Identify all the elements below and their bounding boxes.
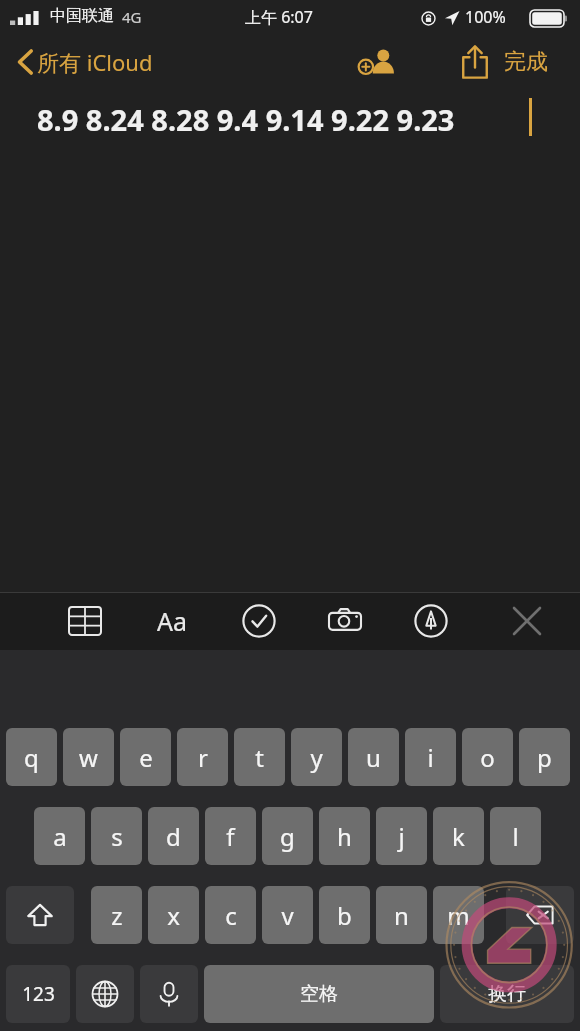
button[interactable]: a bbox=[34, 807, 85, 865]
button[interactable]: Dictation bbox=[140, 965, 198, 1023]
staticText: 完成 bbox=[504, 48, 548, 76]
staticText: d bbox=[166, 820, 181, 853]
button[interactable]: Camera bbox=[322, 592, 368, 650]
button[interactable]: k bbox=[433, 807, 484, 865]
button[interactable]: w bbox=[63, 728, 114, 786]
staticText: w bbox=[79, 741, 98, 774]
button[interactable]: c bbox=[205, 886, 256, 944]
button[interactable]: g bbox=[262, 807, 313, 865]
staticText: q bbox=[24, 741, 39, 774]
button[interactable]: j bbox=[376, 807, 427, 865]
button[interactable]: Next keyboard bbox=[76, 965, 134, 1023]
staticText: u bbox=[366, 741, 381, 774]
button[interactable]: t bbox=[234, 728, 285, 786]
staticText: y bbox=[310, 741, 323, 774]
staticText: 123 bbox=[22, 981, 55, 1007]
staticText: g bbox=[280, 820, 295, 853]
staticText: 100% bbox=[465, 6, 506, 28]
button[interactable]: 123 bbox=[6, 965, 70, 1023]
button[interactable]: Add people bbox=[348, 36, 408, 88]
staticText: v bbox=[281, 899, 294, 932]
button[interactable]: q bbox=[6, 728, 57, 786]
staticText: e bbox=[139, 741, 153, 774]
staticText: x bbox=[167, 899, 180, 932]
staticText: k bbox=[452, 820, 465, 853]
button[interactable]: v bbox=[262, 886, 313, 944]
staticText: 换行 bbox=[488, 982, 526, 1006]
staticText: o bbox=[480, 741, 495, 774]
button[interactable]: Close keyboard bbox=[504, 592, 550, 650]
button[interactable]: f bbox=[205, 807, 256, 865]
button[interactable]: Table bbox=[62, 592, 108, 650]
button[interactable]: Shift bbox=[6, 886, 74, 944]
staticText: 上午 6:07 bbox=[245, 6, 313, 28]
button[interactable]: m bbox=[433, 886, 484, 944]
button[interactable]: u bbox=[348, 728, 399, 786]
button[interactable]: d bbox=[148, 807, 199, 865]
staticText: p bbox=[537, 741, 552, 774]
button[interactable]: Share bbox=[446, 36, 504, 88]
staticText: h bbox=[337, 820, 352, 853]
button[interactable]: 换行 bbox=[440, 965, 574, 1023]
button[interactable]: Checklist bbox=[236, 592, 282, 650]
button[interactable]: o bbox=[462, 728, 513, 786]
staticText: n bbox=[394, 899, 409, 932]
button[interactable]: r bbox=[177, 728, 228, 786]
button[interactable]: p bbox=[519, 728, 570, 786]
button[interactable]: i bbox=[405, 728, 456, 786]
button[interactable]: n bbox=[376, 886, 427, 944]
staticText: Aa bbox=[157, 604, 188, 638]
button[interactable]: 完成 bbox=[498, 36, 554, 88]
staticText: 中国联通 bbox=[50, 6, 114, 26]
staticText: j bbox=[398, 820, 405, 853]
button[interactable]: e bbox=[120, 728, 171, 786]
button[interactable]: h bbox=[319, 807, 370, 865]
staticText: 空格 bbox=[300, 982, 338, 1006]
button[interactable]: b bbox=[319, 886, 370, 944]
staticText: m bbox=[447, 899, 470, 932]
button[interactable]: Delete bbox=[506, 886, 574, 944]
button[interactable]: y bbox=[291, 728, 342, 786]
staticText: l bbox=[512, 820, 519, 853]
button[interactable]: 所有 iCloud bbox=[10, 36, 161, 88]
staticText: t bbox=[255, 741, 264, 774]
button[interactable]: l bbox=[490, 807, 541, 865]
staticText: 4G bbox=[122, 7, 142, 27]
button[interactable]: z bbox=[91, 886, 142, 944]
staticText: c bbox=[225, 899, 237, 932]
staticText: z bbox=[111, 899, 123, 932]
staticText: r bbox=[198, 741, 208, 774]
staticText: b bbox=[337, 899, 352, 932]
button[interactable]: 空格 bbox=[204, 965, 434, 1023]
staticText: i bbox=[427, 741, 434, 774]
button[interactable]: Markup bbox=[408, 592, 454, 650]
staticText: f bbox=[226, 820, 235, 853]
button[interactable]: Aa bbox=[148, 592, 196, 650]
staticText: a bbox=[53, 820, 67, 853]
staticText: s bbox=[111, 820, 123, 853]
staticText: 8.9 8.24 8.28 9.4 9.14 9.22 9.23 bbox=[37, 100, 455, 139]
button[interactable]: s bbox=[91, 807, 142, 865]
button[interactable]: x bbox=[148, 886, 199, 944]
staticText: 所有 iCloud bbox=[37, 47, 153, 77]
